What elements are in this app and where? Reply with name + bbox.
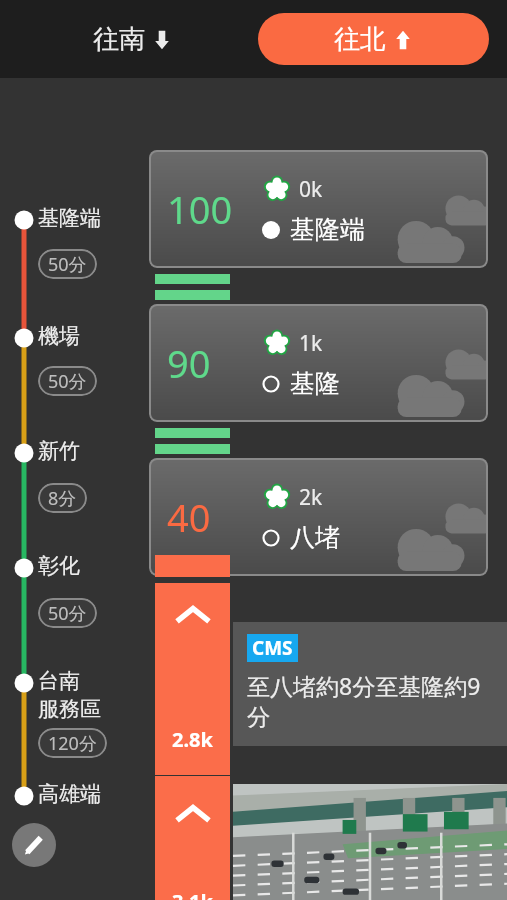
staticText: 0k [299,175,323,204]
staticText: 3.1k [172,888,213,900]
button[interactable]: 往南 [18,13,248,65]
button[interactable]: 40 [149,458,488,576]
staticText: 往北 [334,23,386,56]
staticText: 基隆端 [290,214,365,245]
staticText: 基隆端 [38,205,101,231]
staticText: 50分 [48,369,87,394]
staticText: 新竹 [38,438,80,464]
staticText: 50分 [48,252,87,277]
staticText: 8分 [48,486,77,511]
staticText: 機場 [38,323,80,349]
button[interactable]: CMS [247,634,497,732]
staticText: 基隆 [290,368,340,399]
staticText: CMS [252,635,293,661]
staticText: 高雄端 [38,781,101,807]
button[interactable]: Edit route [12,823,56,867]
staticText: 100 [167,183,233,235]
staticText: 50分 [48,601,87,626]
button[interactable]: 50分 [48,249,87,279]
staticText: 彰化 [38,553,80,579]
staticText: 2.8k [172,726,213,753]
staticText: 八堵 [290,522,340,553]
staticText: 120分 [48,731,97,756]
button[interactable]: 8分 [48,483,77,513]
staticText: 台南 [38,668,80,694]
button[interactable]: 100 [149,150,488,268]
button[interactable]: 90 [149,304,488,422]
staticText: 往南 [93,23,145,56]
button[interactable] [233,784,507,900]
button[interactable]: 3.1k [155,776,230,900]
button[interactable]: 50分 [48,366,87,396]
staticText: 1k [299,329,323,358]
button[interactable]: 120分 [48,728,97,758]
button[interactable]: 2.8k [155,583,230,775]
button[interactable]: 50分 [48,598,87,628]
staticText: 40 [167,491,211,543]
staticText: 服務區 [38,696,101,722]
staticText: 至八堵約8分至基隆約9分 [247,670,497,732]
button[interactable]: 往北 [258,13,489,65]
staticText: 90 [167,337,211,389]
staticText: 2k [299,483,323,512]
